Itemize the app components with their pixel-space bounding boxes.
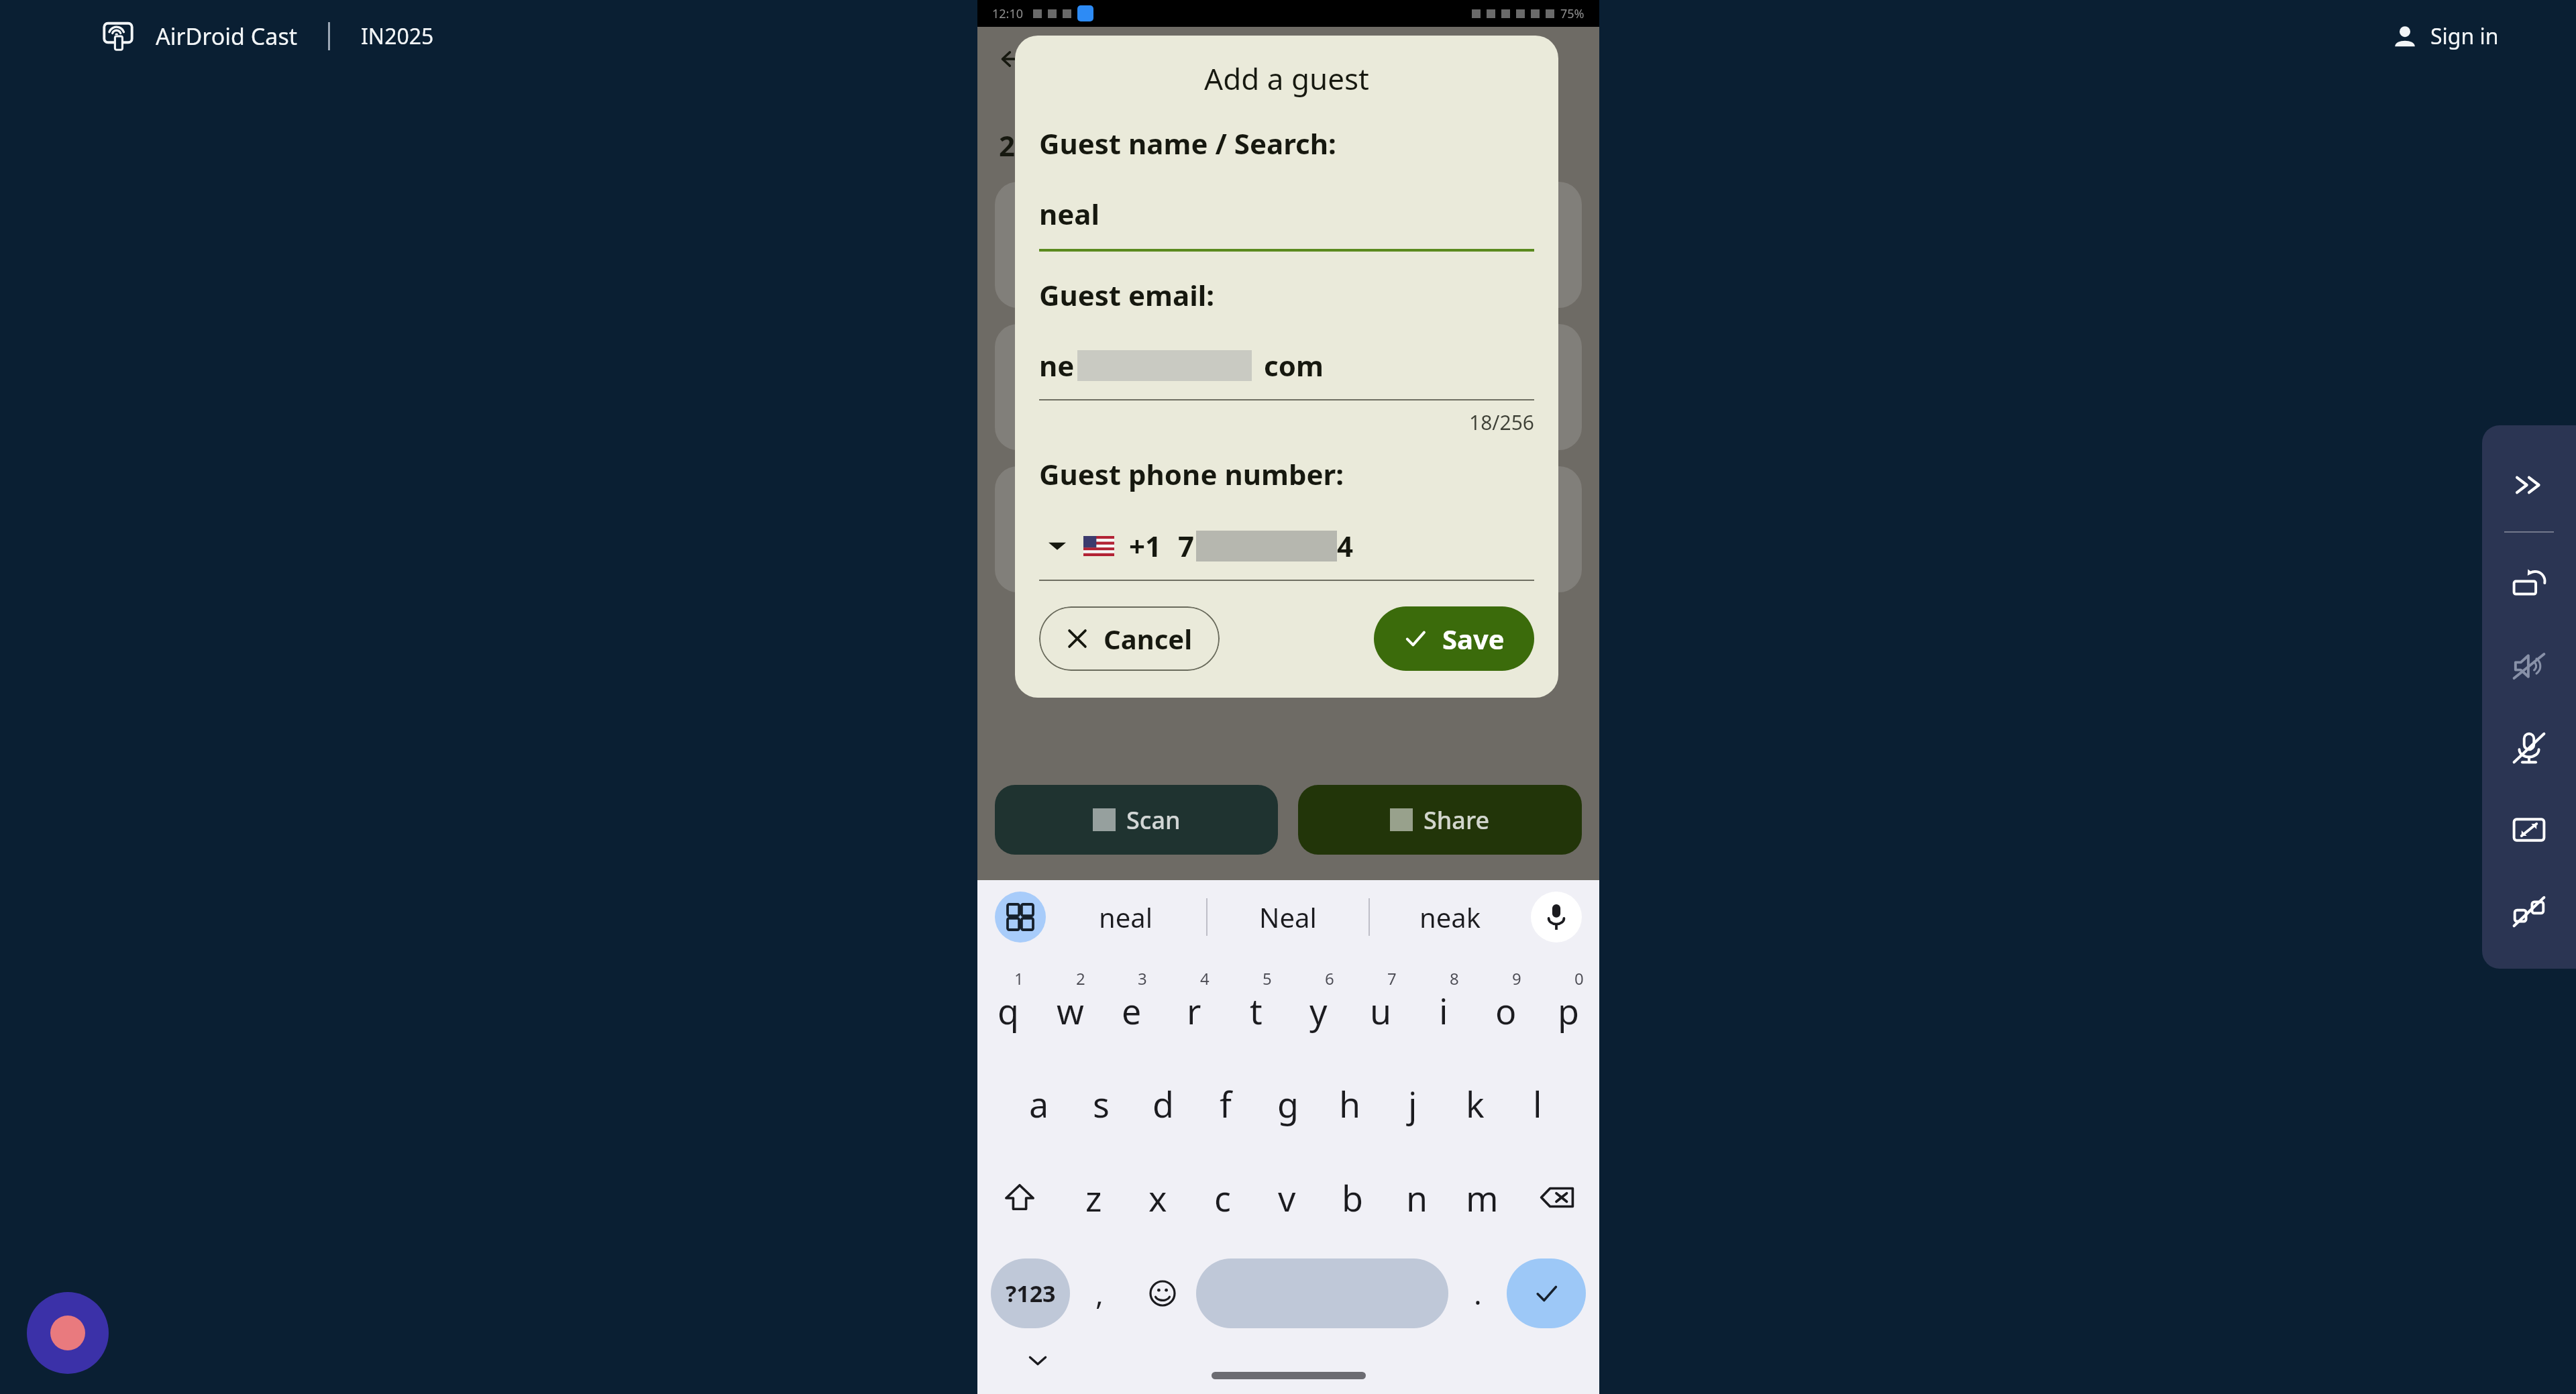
button[interactable]: d [1132, 1060, 1194, 1147]
staticText: 12:10 [992, 5, 1024, 22]
staticText: e [1122, 987, 1142, 1034]
staticText: 0 [1574, 967, 1584, 989]
staticText: z [1085, 1174, 1102, 1222]
staticText: com [1264, 346, 1324, 384]
button[interactable]: Enter [1507, 1258, 1586, 1328]
staticText: Scan [1126, 804, 1181, 837]
button[interactable]: x [1126, 1154, 1190, 1241]
staticText: Neal [1259, 899, 1317, 935]
button[interactable]: Backspace [1515, 1154, 1599, 1241]
staticText: n [1406, 1174, 1428, 1222]
button[interactable]: 2 [1039, 959, 1101, 1053]
staticText: 2 [1076, 967, 1085, 989]
button[interactable]: Space [1196, 1258, 1448, 1328]
staticText: u [1370, 987, 1392, 1034]
staticText: w [1057, 987, 1084, 1034]
staticText: q [998, 987, 1019, 1034]
button[interactable]: 6 [1287, 959, 1350, 1053]
button[interactable]: neak [1370, 880, 1531, 954]
button[interactable]: Emoji [1128, 1250, 1196, 1336]
button[interactable]: 3 [1101, 959, 1163, 1053]
button[interactable]: k [1444, 1060, 1506, 1147]
button[interactable]: ?123 [991, 1258, 1070, 1328]
staticText: 8 [1450, 967, 1459, 989]
button[interactable]: m [1450, 1154, 1515, 1241]
button[interactable]: c [1190, 1154, 1254, 1241]
button[interactable]: j [1381, 1060, 1444, 1147]
staticText: t [1250, 987, 1263, 1034]
button[interactable]: v [1254, 1154, 1320, 1241]
staticText: 5 [1263, 967, 1272, 989]
button[interactable]: z [1061, 1154, 1126, 1241]
staticText: 4 [1200, 967, 1210, 989]
staticText: 9 [1512, 967, 1521, 989]
button[interactable]: l [1506, 1060, 1568, 1147]
staticText: p [1558, 987, 1579, 1034]
button[interactable]: a [1008, 1060, 1070, 1147]
staticText: 4 [1337, 527, 1354, 565]
button[interactable]: 1 [977, 959, 1039, 1053]
staticText: l [1533, 1080, 1542, 1128]
button[interactable]: . [1448, 1250, 1507, 1336]
button[interactable]: Keyboard toolbar [995, 892, 1046, 943]
staticText: Guest name / Search: [1039, 124, 1336, 162]
button[interactable]: 4 [1163, 959, 1225, 1053]
staticText: r [1187, 987, 1201, 1034]
staticText: Guest email: [1039, 276, 1215, 314]
button[interactable]: neal [1046, 880, 1206, 954]
button[interactable]: Sign in [2378, 15, 2512, 58]
staticText: ?123 [1006, 1278, 1056, 1309]
button[interactable]: ne [1039, 346, 1534, 384]
button[interactable]: n [1385, 1154, 1450, 1241]
staticText: i [1439, 987, 1448, 1034]
staticText: ne [1039, 346, 1075, 384]
staticText: m [1466, 1174, 1499, 1222]
button[interactable]: h [1319, 1060, 1381, 1147]
button[interactable]: Microphone off [2500, 719, 2558, 777]
staticText: neak [1419, 899, 1481, 935]
button[interactable]: +1 [1039, 527, 1534, 565]
staticText: 1 [1014, 967, 1024, 989]
button[interactable]: Scan [995, 785, 1278, 855]
staticText: neal [1099, 899, 1153, 935]
staticText: 18/256 [1039, 409, 1534, 436]
staticText: k [1466, 1080, 1485, 1128]
button[interactable]: Rotate [2500, 555, 2558, 613]
button[interactable]: , [1070, 1250, 1128, 1336]
button[interactable]: 8 [1412, 959, 1474, 1053]
button[interactable]: Share [1298, 785, 1582, 855]
button[interactable]: 5 [1225, 959, 1287, 1053]
staticText: Guest phone number: [1039, 455, 1344, 493]
staticText: +1 [1129, 527, 1162, 565]
staticText: 6 [1325, 967, 1334, 989]
button[interactable]: Disconnect [2500, 883, 2558, 941]
staticText: sightseeing [1053, 38, 1232, 81]
staticText: d [1152, 1080, 1174, 1128]
staticText: neal [1039, 195, 1100, 233]
staticText: f [1220, 1080, 1232, 1128]
staticText: Share [1424, 804, 1490, 837]
button[interactable]: f [1194, 1060, 1256, 1147]
button[interactable]: Sound off [2500, 637, 2558, 695]
button[interactable]: Cancel [1039, 606, 1220, 671]
button[interactable]: s [1070, 1060, 1132, 1147]
button[interactable]: neal [1039, 195, 1534, 233]
button[interactable]: Full screen [2500, 801, 2558, 859]
staticText: Add a guest [1039, 58, 1534, 99]
staticText: x [1148, 1174, 1167, 1222]
button[interactable]: Collapse [2500, 456, 2558, 514]
button[interactable]: Hide keyboard [1019, 1342, 1057, 1379]
button[interactable]: Record [27, 1292, 109, 1374]
button[interactable]: b [1320, 1154, 1385, 1241]
button[interactable]: 0 [1537, 959, 1599, 1053]
button[interactable]: AirDroid Cast [101, 19, 136, 54]
staticText: j [1408, 1080, 1417, 1128]
staticText: 2 [999, 126, 1016, 164]
button[interactable]: g [1256, 1060, 1319, 1147]
button[interactable]: 9 [1474, 959, 1537, 1053]
button[interactable]: Shift [977, 1154, 1061, 1241]
button[interactable]: 7 [1350, 959, 1412, 1053]
button[interactable]: Save [1374, 606, 1534, 671]
button[interactable]: Voice input [1531, 892, 1582, 943]
button[interactable]: Neal [1207, 880, 1368, 954]
